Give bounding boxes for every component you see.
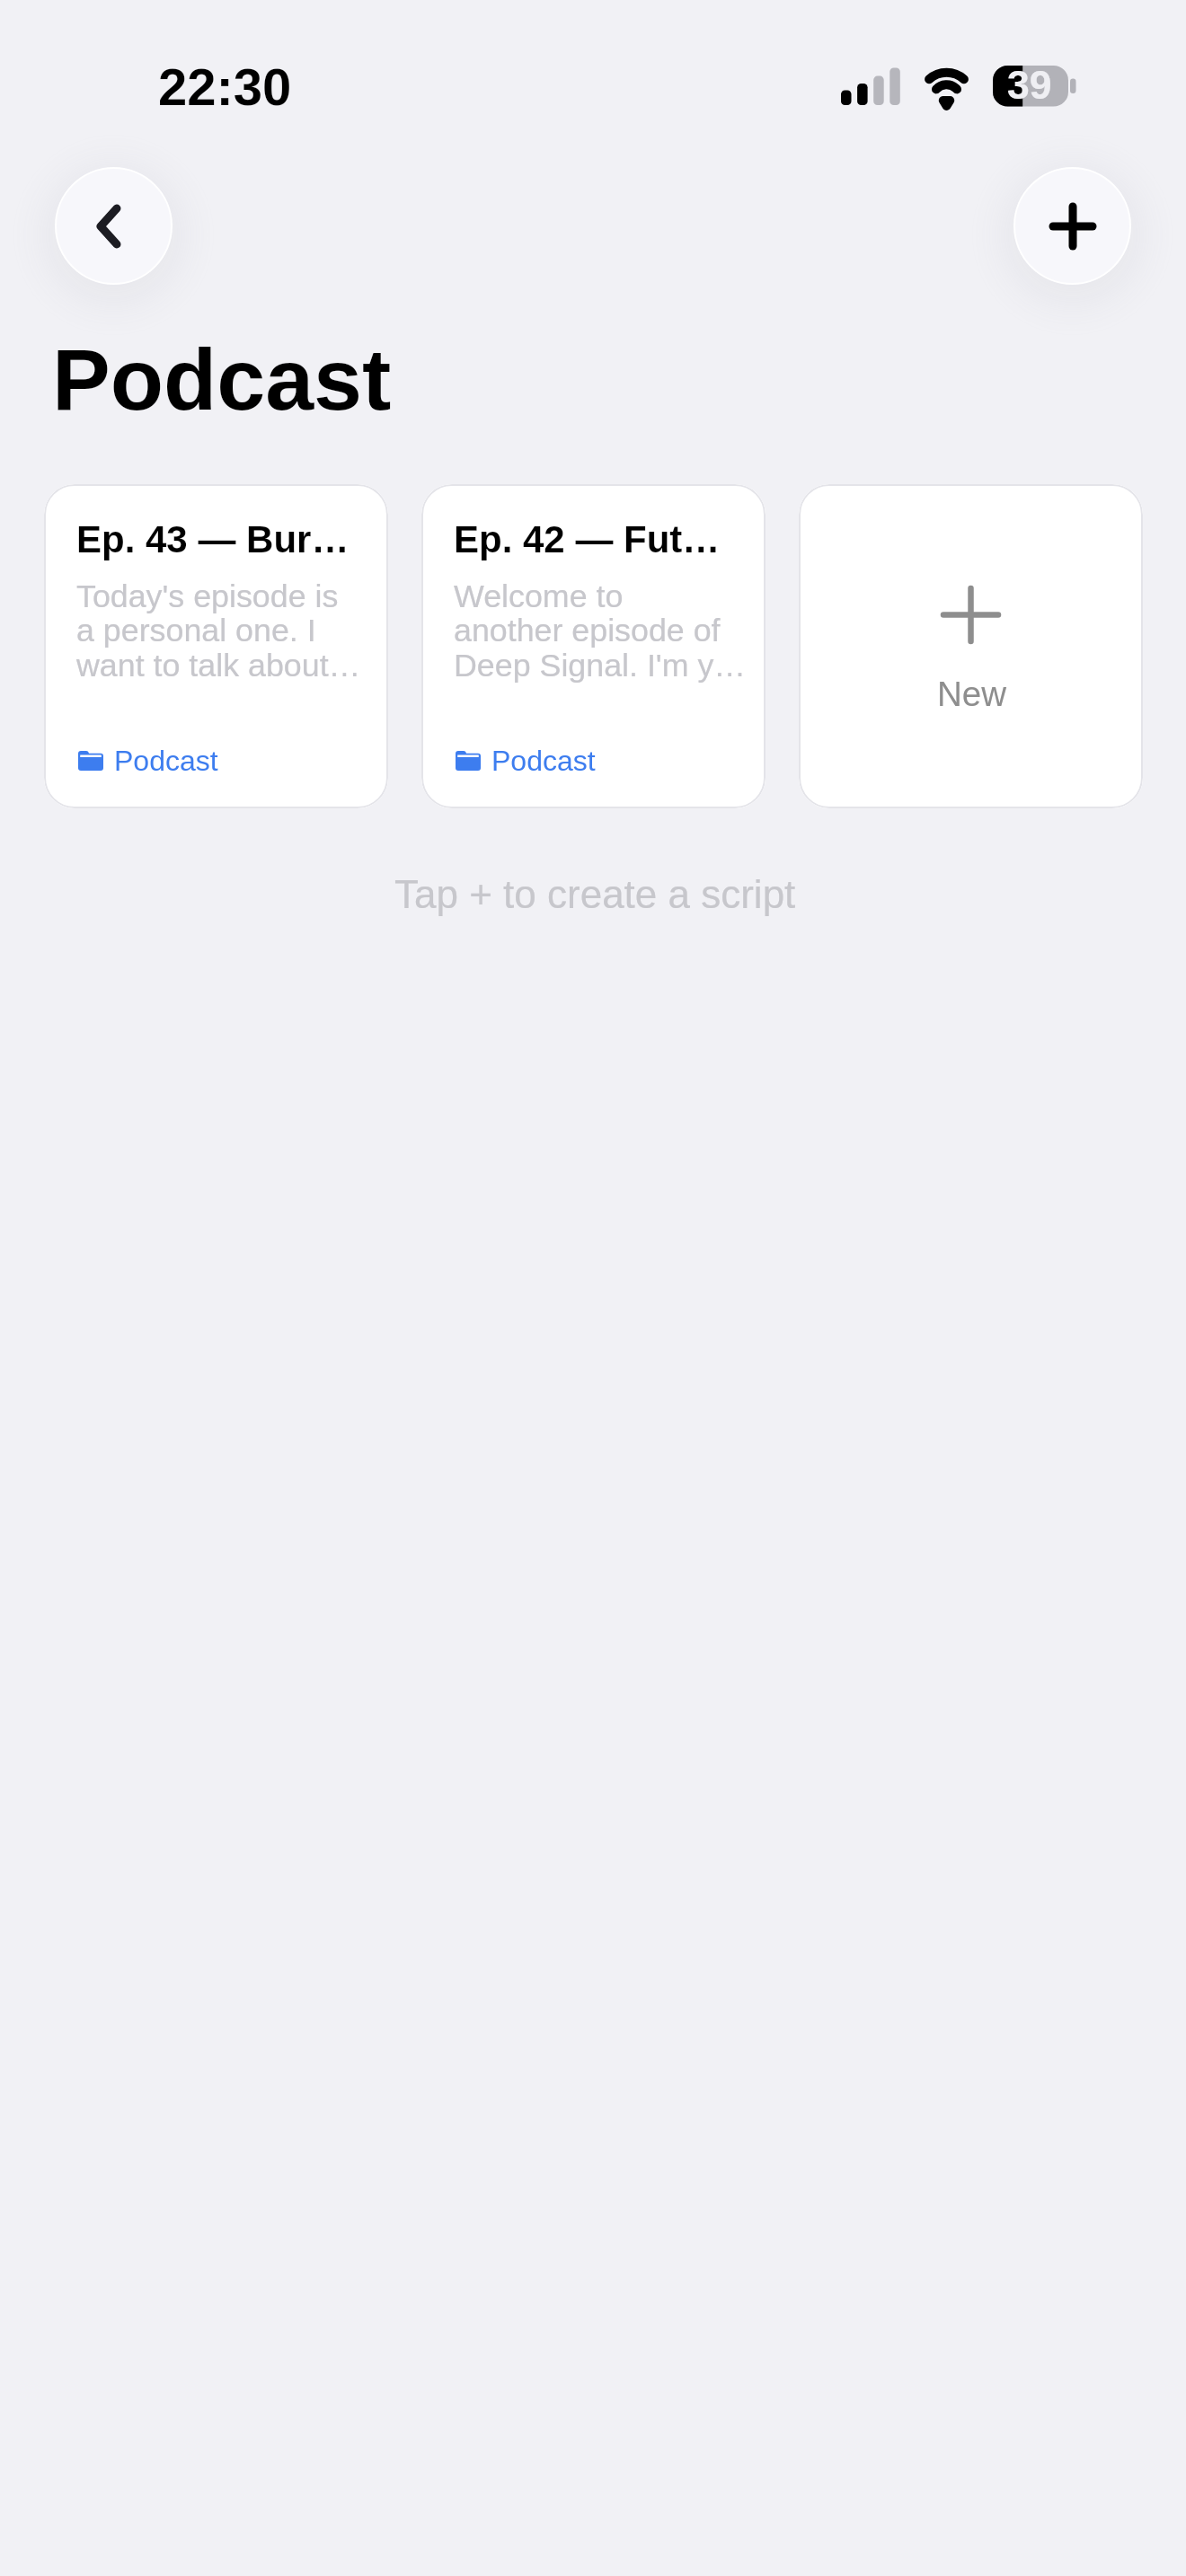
staticText: Podcast bbox=[52, 331, 392, 428]
staticText: Ep. 42 — Fut… bbox=[454, 518, 721, 560]
staticText: Podcast bbox=[491, 745, 596, 777]
button[interactable]: Ep. 43 — Bur… bbox=[44, 484, 388, 808]
button[interactable]: Ep. 42 — Fut… bbox=[421, 484, 766, 808]
button[interactable]: New bbox=[799, 484, 1143, 808]
staticText: 22:30 bbox=[158, 57, 292, 116]
button[interactable]: Back bbox=[55, 167, 173, 285]
staticText: 39 bbox=[1007, 63, 1052, 104]
button[interactable]: Add bbox=[1013, 167, 1131, 285]
staticText: Podcast bbox=[114, 745, 218, 777]
staticText: another episode of bbox=[454, 613, 721, 648]
staticText: Welcome to bbox=[454, 578, 624, 614]
staticText: Tap + to create a script bbox=[394, 872, 796, 916]
staticText: Deep Signal. I'm y… bbox=[454, 648, 747, 684]
staticText: a personal one. I bbox=[76, 613, 316, 648]
staticText: Today's episode is bbox=[76, 578, 339, 614]
staticText: want to talk about… bbox=[76, 648, 361, 684]
staticText: New bbox=[937, 675, 1007, 713]
staticText: Ep. 43 — Bur… bbox=[76, 518, 350, 560]
